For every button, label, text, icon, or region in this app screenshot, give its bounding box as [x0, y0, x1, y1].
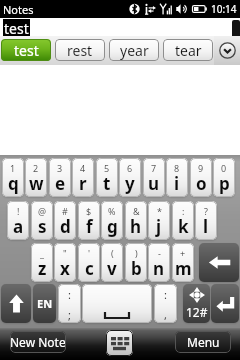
staticText: o — [196, 172, 207, 195]
button[interactable]: ! — [7, 201, 29, 240]
staticText: m — [175, 257, 192, 280]
button[interactable]: ) — [125, 243, 147, 282]
staticText: $ — [86, 205, 92, 217]
staticText: _ — [40, 247, 44, 259]
staticText: " — [63, 247, 67, 259]
staticText: - — [158, 247, 161, 259]
button[interactable]: $ — [78, 201, 100, 240]
staticText: : — [68, 287, 71, 302]
staticText: ? — [204, 205, 208, 217]
staticText: ; — [68, 307, 71, 322]
button[interactable]: Keyboard — [106, 330, 133, 356]
button[interactable]: 1 — [2, 158, 24, 197]
staticText: y — [125, 172, 135, 195]
staticText: a — [13, 215, 24, 238]
staticText: # — [62, 205, 68, 217]
staticText: Menu — [187, 334, 220, 350]
button[interactable]: ( — [101, 243, 123, 282]
button[interactable]: - — [148, 243, 170, 282]
staticText: % — [108, 205, 116, 217]
staticText: 3 — [57, 162, 63, 174]
staticText: year — [120, 41, 149, 60]
button[interactable]: More suggestions — [214, 36, 240, 65]
staticText: 5 — [104, 162, 110, 174]
staticText: n — [153, 257, 165, 280]
staticText: ' — [88, 247, 91, 259]
staticText: rest — [67, 41, 93, 60]
button[interactable]: 8 — [166, 158, 188, 197]
button[interactable]: Shift — [1, 284, 31, 323]
staticText: 4 — [80, 162, 86, 174]
button[interactable]: 4 — [72, 158, 94, 197]
button[interactable]: 0 — [213, 158, 235, 197]
staticText: 0 — [221, 162, 227, 174]
staticText: s — [38, 215, 47, 238]
staticText: l — [203, 215, 209, 238]
button[interactable]: & — [125, 201, 147, 240]
button[interactable]: rest — [55, 39, 105, 61]
button[interactable]: 2 — [25, 158, 47, 197]
button[interactable]: @ — [31, 201, 53, 240]
button[interactable]: + — [172, 243, 194, 282]
button[interactable]: Symbols and navigation — [183, 284, 210, 323]
button[interactable]: * — [148, 201, 170, 240]
staticText: @ — [38, 205, 47, 217]
staticText: tear — [175, 41, 202, 60]
staticText: x — [60, 257, 70, 280]
staticText: f — [86, 215, 93, 238]
button[interactable]: 5 — [96, 158, 118, 197]
button[interactable]: " — [54, 243, 76, 282]
staticText: u — [148, 172, 160, 195]
staticText: 9 — [198, 162, 204, 174]
button[interactable]: tear — [163, 39, 213, 61]
staticText: e — [55, 172, 66, 195]
staticText: d — [60, 215, 71, 238]
staticText: c — [85, 257, 94, 280]
staticText: 10:14 — [211, 2, 237, 16]
button[interactable]: 6 — [119, 158, 141, 197]
button[interactable]: Enter — [211, 284, 239, 323]
button[interactable]: Language EN — [33, 284, 56, 323]
button[interactable]: test — [1, 39, 51, 61]
staticText: p — [219, 172, 230, 195]
staticText: 2 — [33, 162, 39, 174]
staticText: & — [133, 205, 140, 217]
staticText: i — [174, 172, 180, 195]
staticText: t — [103, 172, 111, 195]
staticText: ) — [135, 247, 138, 259]
staticText: ! — [17, 205, 20, 217]
staticText: + — [180, 247, 186, 259]
staticText: test — [4, 19, 29, 36]
button[interactable]: : — [58, 284, 81, 323]
button[interactable]: : — [172, 201, 194, 240]
button[interactable]: year — [109, 39, 159, 61]
staticText: v — [107, 257, 117, 280]
staticText: j — [156, 215, 162, 238]
button[interactable]: New Note — [10, 331, 66, 353]
button[interactable]: 7 — [143, 158, 165, 197]
button[interactable]: _ — [31, 243, 53, 282]
button[interactable]: 3 — [49, 158, 71, 197]
staticText: 8 — [174, 162, 180, 174]
staticText: q — [8, 172, 19, 195]
button[interactable]: # — [54, 201, 76, 240]
staticText: w — [29, 172, 44, 195]
button[interactable]: : — [154, 284, 177, 323]
staticText: EN — [37, 296, 53, 311]
staticText: New Note — [10, 334, 66, 350]
staticText: b — [131, 257, 142, 280]
button[interactable]: % — [101, 201, 123, 240]
button[interactable]: Menu — [175, 331, 231, 353]
button[interactable]: 9 — [190, 158, 212, 197]
button[interactable]: Backspace — [199, 243, 239, 282]
button[interactable]: Space — [82, 284, 152, 323]
button[interactable]: ? — [195, 201, 217, 240]
staticText: ( — [111, 247, 114, 259]
staticText: test — [14, 41, 39, 60]
staticText: , — [164, 307, 167, 322]
staticText: 12# — [186, 304, 208, 320]
button[interactable]: ' — [78, 243, 100, 282]
staticText: g — [107, 215, 118, 238]
staticText: * — [157, 205, 162, 217]
staticText: h — [130, 215, 142, 238]
